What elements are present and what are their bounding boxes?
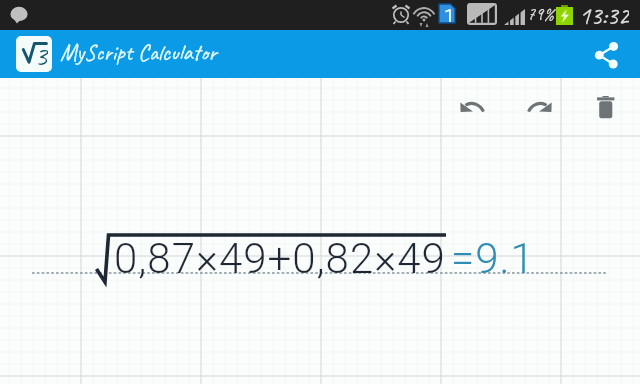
button[interactable]: Delete — [582, 83, 630, 131]
staticText: =9.1 — [451, 234, 535, 283]
staticText: 79% — [527, 3, 554, 26]
button[interactable]: Share — [585, 33, 629, 77]
button[interactable]: Redo — [515, 84, 563, 132]
staticText: 13:32 — [579, 0, 629, 30]
staticText: 3 — [34, 37, 48, 72]
staticText: 0,87×49+0,82×49 — [114, 234, 446, 283]
staticText: 1 — [444, 4, 455, 26]
staticText: MyScript Calculator — [60, 38, 217, 67]
button[interactable]: Undo — [449, 84, 497, 132]
